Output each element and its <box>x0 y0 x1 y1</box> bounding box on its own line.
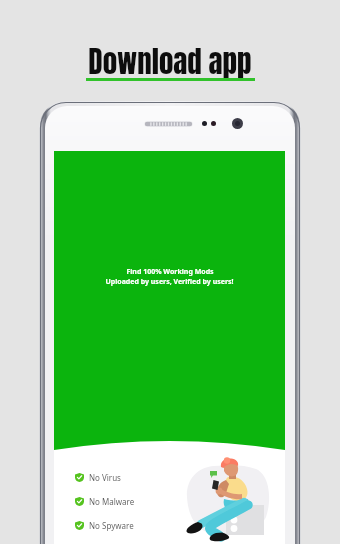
staticText: Download app <box>88 40 252 84</box>
staticText: No Malware <box>89 496 135 507</box>
button[interactable]: App preview <box>39 101 301 544</box>
staticText: Uploaded by users, Verified by users! <box>105 277 234 287</box>
button[interactable]: No Malware <box>75 496 135 507</box>
staticText: Find 100% Working Mods <box>126 267 214 277</box>
button[interactable]: Download app <box>80 40 260 86</box>
button[interactable]: No Virus <box>75 472 121 483</box>
staticText: No Virus <box>89 472 121 483</box>
staticText: No Spyware <box>89 520 134 531</box>
button[interactable]: No Spyware <box>75 520 134 531</box>
